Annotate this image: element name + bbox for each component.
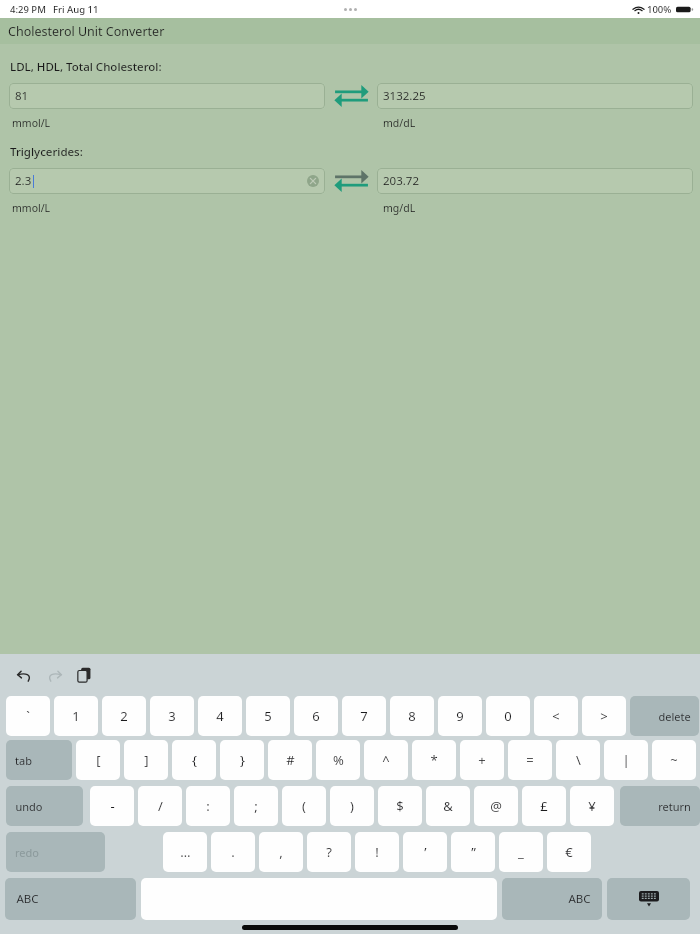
button[interactable]: ¥ bbox=[570, 786, 614, 826]
button[interactable]: _ bbox=[499, 832, 543, 872]
button[interactable]: 0 bbox=[486, 696, 530, 736]
staticText: 4 bbox=[216, 707, 224, 725]
button[interactable]: tab bbox=[6, 740, 72, 780]
staticText: mg/dL bbox=[383, 201, 416, 215]
staticText: ) bbox=[350, 797, 354, 815]
staticText: Triglycerides: bbox=[10, 144, 83, 160]
staticText: & bbox=[443, 797, 453, 815]
staticText: 7 bbox=[360, 707, 368, 725]
button[interactable]: \ bbox=[556, 740, 600, 780]
staticText: ( bbox=[302, 797, 306, 815]
staticText: . bbox=[231, 843, 235, 861]
staticText: - bbox=[110, 797, 115, 815]
button[interactable]: 5 bbox=[246, 696, 290, 736]
staticText: ABC bbox=[16, 891, 39, 907]
staticText: mmol/L bbox=[12, 201, 51, 215]
staticText: ! bbox=[375, 843, 379, 861]
button[interactable]: ] bbox=[124, 740, 168, 780]
button[interactable]: delete bbox=[630, 696, 699, 736]
button[interactable]: , bbox=[259, 832, 303, 872]
button[interactable]: 4 bbox=[198, 696, 242, 736]
button[interactable]: … bbox=[163, 832, 207, 872]
button[interactable]: # bbox=[268, 740, 312, 780]
staticText: ^ bbox=[382, 751, 390, 769]
button[interactable]: ; bbox=[234, 786, 278, 826]
button[interactable]: - bbox=[90, 786, 134, 826]
button[interactable]: [ bbox=[76, 740, 120, 780]
staticText: undo bbox=[15, 799, 43, 814]
button[interactable]: ( bbox=[282, 786, 326, 826]
button[interactable]: Swap conversion direction bbox=[334, 168, 369, 194]
button[interactable]: ” bbox=[451, 832, 495, 872]
button[interactable]: * bbox=[412, 740, 456, 780]
staticText: % bbox=[333, 751, 344, 769]
button[interactable]: + bbox=[460, 740, 504, 780]
button[interactable]: & bbox=[426, 786, 470, 826]
staticText: { bbox=[192, 751, 197, 769]
button[interactable]: Clear text bbox=[307, 175, 319, 187]
button[interactable]: return bbox=[620, 786, 700, 826]
staticText: ¥ bbox=[588, 797, 596, 815]
button[interactable]: 8 bbox=[390, 696, 434, 736]
button[interactable]: 3 bbox=[150, 696, 194, 736]
button[interactable]: undo bbox=[6, 786, 83, 826]
staticText: 2.3 bbox=[15, 173, 32, 189]
button[interactable]: % bbox=[316, 740, 360, 780]
button[interactable]: 2 bbox=[102, 696, 146, 736]
button[interactable]: 81 bbox=[9, 83, 325, 109]
staticText: $ bbox=[396, 797, 404, 815]
staticText: : bbox=[206, 797, 210, 815]
button[interactable]: Redo bbox=[43, 664, 65, 686]
staticText: @ bbox=[490, 797, 502, 815]
button[interactable]: ABC bbox=[502, 878, 602, 920]
staticText: redo bbox=[15, 845, 39, 860]
button[interactable]: 2.3 bbox=[9, 168, 325, 194]
button[interactable]: 6 bbox=[294, 696, 338, 736]
button[interactable]: Swap conversion direction bbox=[334, 83, 369, 109]
button[interactable]: ? bbox=[307, 832, 351, 872]
staticText: md/dL bbox=[383, 116, 416, 130]
staticText: < bbox=[552, 707, 560, 725]
staticText: delete bbox=[658, 709, 691, 724]
staticText: ` bbox=[26, 707, 30, 725]
button[interactable]: = bbox=[508, 740, 552, 780]
staticText: £ bbox=[540, 797, 548, 815]
button[interactable]: > bbox=[582, 696, 626, 736]
button[interactable]: 3132.25 bbox=[377, 83, 693, 109]
button[interactable]: 203.72 bbox=[377, 168, 693, 194]
button[interactable]: / bbox=[138, 786, 182, 826]
button[interactable]: redo bbox=[6, 832, 105, 872]
button[interactable]: 7 bbox=[342, 696, 386, 736]
button[interactable]: ^ bbox=[364, 740, 408, 780]
button[interactable]: < bbox=[534, 696, 578, 736]
staticText: 2 bbox=[120, 707, 128, 725]
staticText: mmol/L bbox=[12, 116, 51, 130]
button[interactable]: ABC bbox=[5, 878, 136, 920]
staticText: ABC bbox=[568, 891, 591, 907]
staticText: _ bbox=[518, 843, 524, 861]
button[interactable]: 1 bbox=[54, 696, 98, 736]
button[interactable]: @ bbox=[474, 786, 518, 826]
button[interactable]: Hide keyboard bbox=[607, 878, 690, 920]
staticText: + bbox=[478, 751, 486, 769]
staticText: 4:29 PM bbox=[10, 3, 46, 16]
button[interactable]: ! bbox=[355, 832, 399, 872]
button[interactable]: . bbox=[211, 832, 255, 872]
button[interactable]: € bbox=[547, 832, 591, 872]
button[interactable]: 9 bbox=[438, 696, 482, 736]
button[interactable]: $ bbox=[378, 786, 422, 826]
button[interactable]: { bbox=[172, 740, 216, 780]
button[interactable]: ) bbox=[330, 786, 374, 826]
button[interactable]: ` bbox=[6, 696, 50, 736]
staticText: 3 bbox=[168, 707, 176, 725]
button[interactable]: : bbox=[186, 786, 230, 826]
button[interactable]: ’ bbox=[403, 832, 447, 872]
button[interactable]: Undo bbox=[13, 664, 35, 686]
button[interactable]: } bbox=[220, 740, 264, 780]
button[interactable]: | bbox=[604, 740, 648, 780]
button[interactable]: £ bbox=[522, 786, 566, 826]
button[interactable]: ~ bbox=[652, 740, 696, 780]
staticText: 203.72 bbox=[383, 173, 419, 189]
button[interactable]: Paste bbox=[73, 664, 95, 686]
